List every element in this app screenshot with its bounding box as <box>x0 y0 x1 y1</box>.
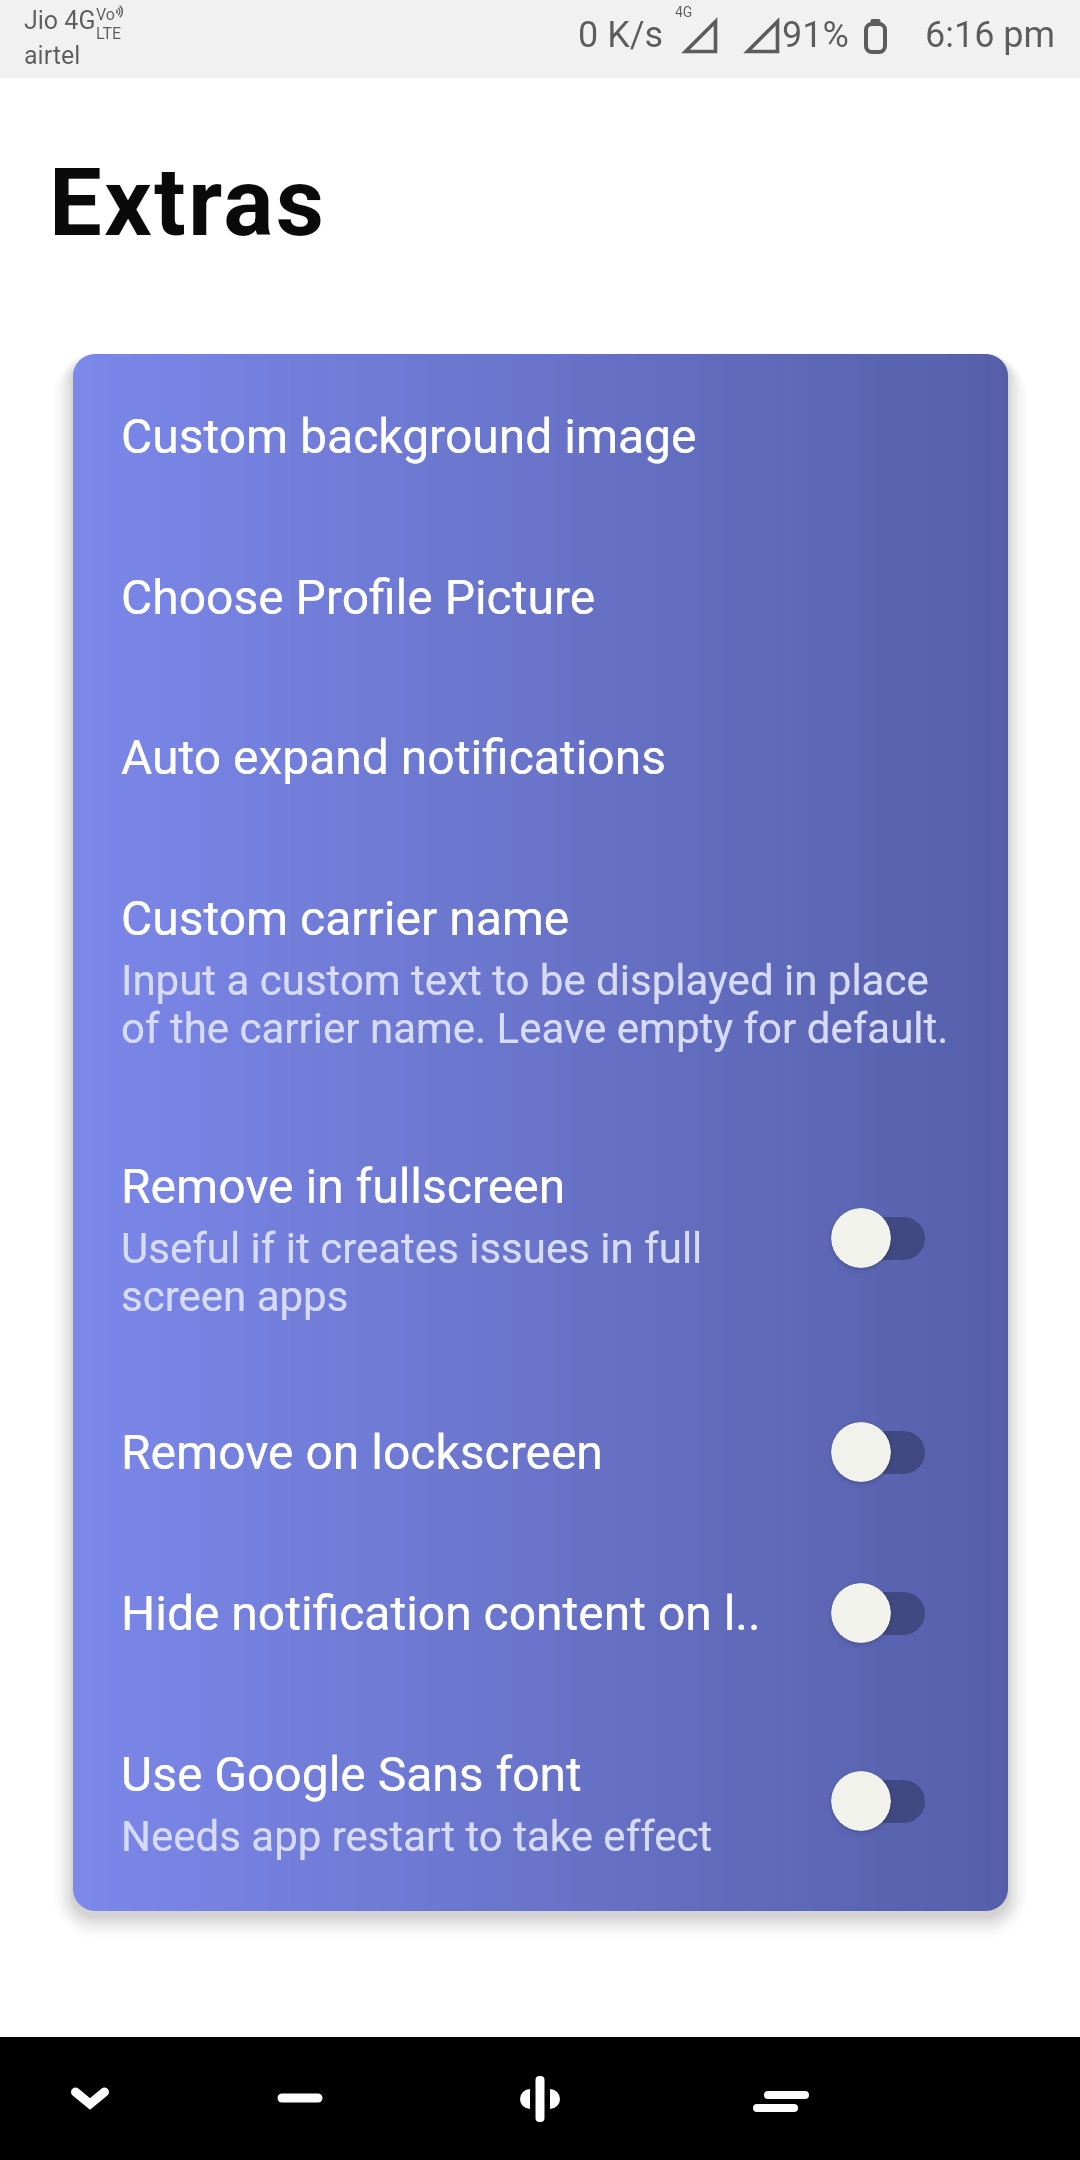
staticText: Input a custom text to be displayed in p… <box>121 957 949 1053</box>
button[interactable]: Remove on lockscreen <box>73 1397 1008 1499</box>
button[interactable]: Toggle switch, off <box>830 1582 940 1644</box>
staticText: LTE <box>96 24 122 43</box>
staticText: 6:16 pm <box>925 14 1056 56</box>
button[interactable]: Split screen <box>450 2037 630 2160</box>
button[interactable]: Custom background image <box>73 381 1008 483</box>
staticText: Jio 4G <box>24 6 96 35</box>
staticText: Remove on lockscreen <box>121 1423 603 1481</box>
button[interactable]: Toggle switch, off <box>830 1421 940 1483</box>
staticText: Extras <box>49 148 327 258</box>
staticText: Choose Profile Picture <box>121 568 596 626</box>
button[interactable]: Use Google Sans font <box>73 1719 1008 1881</box>
button[interactable]: Collapse <box>0 2037 180 2160</box>
staticText: Remove in fullscreen <box>121 1157 566 1215</box>
button[interactable]: Choose Profile Picture <box>73 542 1008 644</box>
button[interactable]: Hide notification content on l.. <box>73 1558 1008 1660</box>
staticText: Use Google Sans font <box>121 1745 582 1803</box>
button[interactable]: Auto expand notifications <box>73 702 1008 804</box>
staticText: Auto expand notifications <box>121 728 666 786</box>
staticText: 0 K/s <box>578 14 664 56</box>
staticText: Vo <box>96 5 115 24</box>
button[interactable]: Toggle switch, off <box>830 1207 940 1269</box>
staticText: Custom carrier name <box>121 889 570 947</box>
button[interactable]: Recent apps <box>690 2037 870 2160</box>
staticText: airtel <box>24 41 81 70</box>
staticText: Useful if it creates issues in full scre… <box>121 1225 703 1321</box>
staticText: Needs app restart to take effect <box>121 1813 713 1861</box>
staticText: 4G <box>675 4 693 20</box>
button[interactable]: Custom carrier name <box>73 863 1008 1073</box>
button[interactable]: Toggle switch, off <box>830 1770 940 1832</box>
button[interactable]: Remove in fullscreen <box>73 1131 1008 1341</box>
staticText: Custom background image <box>121 407 697 465</box>
staticText: Hide notification content on l.. <box>121 1584 761 1642</box>
staticText: 91% <box>782 14 849 56</box>
button[interactable]: Home <box>210 2037 390 2160</box>
